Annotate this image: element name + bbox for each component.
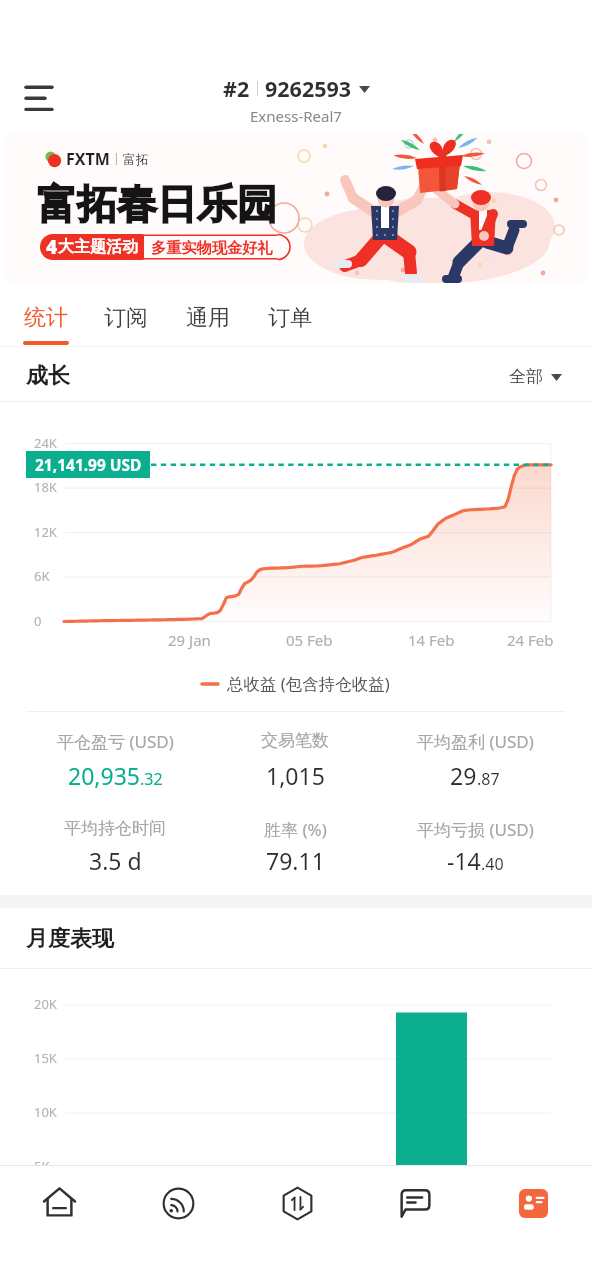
- staticText: 29 Jan: [168, 630, 211, 650]
- staticText: 大主题活动: [58, 237, 138, 257]
- staticText: 05 Feb: [286, 630, 333, 650]
- button[interactable]: Signals: [119, 1166, 238, 1280]
- staticText: 统计: [24, 304, 68, 332]
- staticText: 18K: [34, 478, 57, 496]
- staticText: 平仓盈亏 (USD): [57, 730, 174, 753]
- staticText: #2: [223, 74, 250, 103]
- staticText: 20K: [34, 995, 57, 1013]
- button[interactable]: Profile: [474, 1166, 592, 1280]
- staticText: 总收益 (包含持仓收益): [227, 672, 390, 695]
- button[interactable]: Trade: [238, 1166, 356, 1280]
- staticText: .40: [481, 853, 504, 875]
- staticText: 29: [450, 760, 477, 791]
- button[interactable]: 通用: [176, 290, 240, 352]
- staticText: 多重实物现金好礼: [151, 238, 273, 257]
- staticText: 成长: [26, 362, 70, 390]
- staticText: 4: [46, 234, 58, 260]
- staticText: 10K: [34, 1103, 57, 1121]
- staticText: -14: [447, 845, 481, 876]
- staticText: 21,141.99 USD: [35, 454, 142, 475]
- staticText: 订阅: [104, 304, 148, 332]
- staticText: 9262593: [265, 74, 352, 103]
- staticText: 富拓春日乐园: [37, 179, 277, 229]
- button[interactable]: 统计: [14, 290, 78, 352]
- staticText: Exness-Real7: [250, 106, 342, 126]
- staticText: 全部: [509, 366, 543, 387]
- button[interactable]: 订阅: [94, 290, 158, 352]
- staticText: 24K: [34, 434, 57, 452]
- staticText: 14 Feb: [408, 630, 455, 650]
- staticText: FXTM: [66, 148, 110, 170]
- staticText: .87: [477, 768, 500, 790]
- staticText: 5K: [34, 1157, 50, 1175]
- button[interactable]: Home: [0, 1166, 119, 1280]
- staticText: 交易笔数: [261, 730, 329, 751]
- button[interactable]: 全部: [505, 362, 566, 391]
- staticText: 平均亏损 (USD): [417, 818, 534, 841]
- staticText: 24 Feb: [507, 630, 554, 650]
- staticText: 月度表现: [26, 925, 114, 953]
- button[interactable]: 订单: [258, 290, 322, 352]
- staticText: 79.11: [266, 845, 325, 876]
- staticText: 平均持仓时间: [64, 818, 166, 839]
- staticText: .32: [140, 768, 163, 790]
- staticText: 1,015: [266, 760, 325, 791]
- button[interactable]: #2: [223, 74, 370, 103]
- button[interactable]: Menu: [10, 72, 62, 124]
- button[interactable]: FXTM: [5, 134, 587, 283]
- staticText: 12K: [34, 523, 57, 541]
- staticText: 订单: [268, 304, 312, 332]
- button[interactable]: Chat: [356, 1166, 474, 1280]
- staticText: 3.5 d: [89, 845, 142, 876]
- staticText: 胜率 (%): [264, 818, 327, 841]
- staticText: 富拓: [123, 151, 149, 167]
- staticText: 0: [34, 612, 42, 630]
- staticText: 6K: [34, 567, 50, 585]
- staticText: 通用: [186, 304, 230, 332]
- staticText: 15K: [34, 1049, 57, 1067]
- staticText: 平均盈利 (USD): [417, 730, 534, 753]
- staticText: 20,935: [68, 760, 140, 791]
